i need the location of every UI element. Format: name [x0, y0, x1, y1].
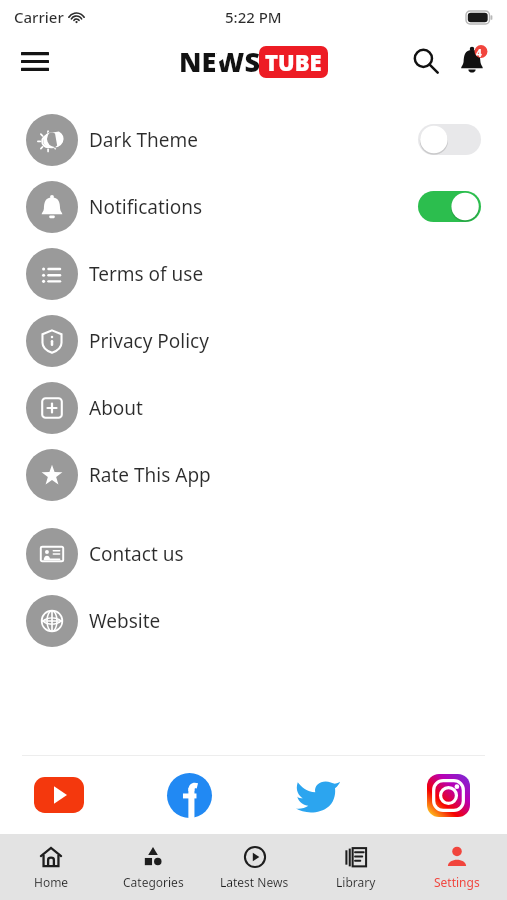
staticText: Dark Theme — [89, 127, 198, 153]
staticText: Privacy Policy — [89, 328, 209, 354]
button[interactable]: Dark Theme — [0, 106, 507, 173]
button[interactable]: Twitter — [289, 766, 347, 824]
staticText: Terms of use — [89, 261, 204, 287]
button[interactable]: Notifications, 4 new — [449, 38, 495, 84]
staticText: Website — [89, 608, 161, 634]
button[interactable]: Instagram — [419, 766, 477, 824]
button[interactable]: Toggle off — [418, 124, 481, 155]
staticText: Contact us — [89, 541, 184, 567]
button[interactable]: About — [0, 374, 507, 441]
staticText: Categories — [123, 874, 184, 890]
button[interactable]: Terms of use — [0, 240, 507, 307]
staticText: Latest News — [220, 874, 289, 890]
button[interactable]: Categories — [102, 834, 204, 900]
staticText: NEWS — [179, 43, 260, 80]
button[interactable]: Latest News — [204, 834, 305, 900]
staticText: Notifications — [89, 194, 203, 220]
button[interactable]: Facebook — [160, 766, 218, 824]
button[interactable]: YouTube — [30, 766, 88, 824]
button[interactable]: Settings — [406, 834, 507, 900]
button[interactable]: Privacy Policy — [0, 307, 507, 374]
staticText: Home — [34, 874, 69, 890]
staticText: Library — [336, 874, 376, 890]
button[interactable]: Toggle on — [418, 191, 481, 222]
button[interactable]: Contact us — [0, 520, 507, 587]
staticText: Settings — [434, 874, 480, 890]
button[interactable]: Home — [0, 834, 102, 900]
button[interactable]: Notifications — [0, 173, 507, 240]
button[interactable]: Library — [305, 834, 406, 900]
staticText: Rate This App — [89, 462, 211, 488]
staticText: Carrier — [14, 7, 64, 27]
button[interactable]: Website — [0, 587, 507, 654]
staticText: About — [89, 395, 143, 421]
staticText: 4 — [476, 46, 482, 60]
staticText: TUBE — [265, 47, 322, 77]
staticText: 5:22 PM — [225, 7, 282, 27]
button[interactable]: Search — [403, 38, 449, 84]
button[interactable]: Rate This App — [0, 441, 507, 508]
button[interactable]: Menu — [12, 38, 58, 84]
